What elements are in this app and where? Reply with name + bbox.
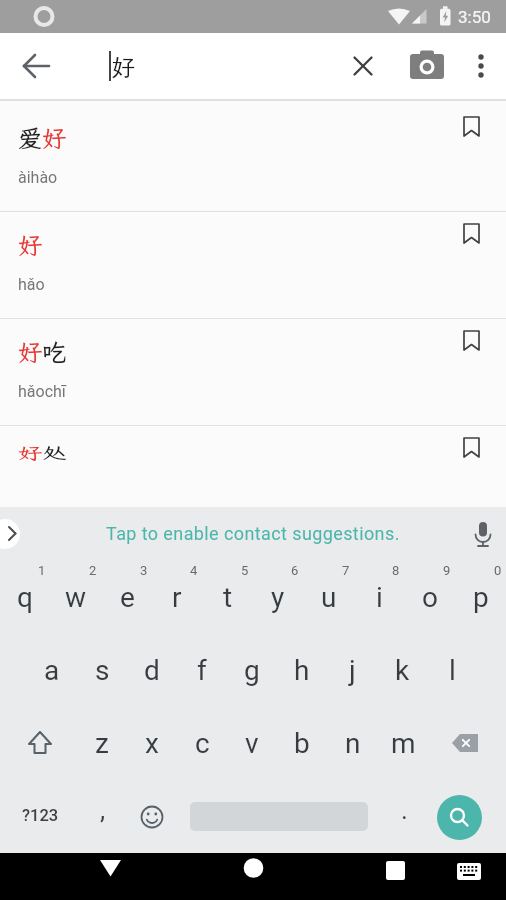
button[interactable] [15,718,65,768]
staticText: h [294,654,310,687]
staticText: t [223,581,233,614]
button[interactable]: g [227,645,277,695]
button[interactable]: k [377,645,427,695]
staticText: 8 [392,563,400,578]
button[interactable] [372,853,419,900]
staticText: 4 [190,563,198,578]
button[interactable]: 9 [422,545,472,595]
staticText: m [391,727,416,760]
button[interactable]: 3 [119,545,169,595]
button[interactable] [463,437,480,458]
staticText: b [294,727,310,760]
button[interactable]: 好 [112,53,135,82]
button[interactable]: c [177,718,227,768]
staticText: n [345,727,361,760]
staticText: u [321,581,337,614]
staticText: 好处 [18,442,66,464]
staticText: 0 [494,563,502,578]
button[interactable] [130,795,174,839]
button[interactable]: z [77,718,127,768]
button[interactable]: f [177,645,227,695]
button[interactable] [405,44,449,88]
button[interactable] [463,223,480,244]
button[interactable]: q [0,572,50,622]
button[interactable] [12,42,60,90]
staticText: hǎochī [18,382,66,401]
button[interactable]: y [253,572,303,622]
staticText: 1 [38,563,46,578]
staticText: w [65,581,87,614]
button[interactable]: 好 [0,212,506,319]
staticText: j [349,654,356,687]
button[interactable]: m [378,718,428,768]
button[interactable]: ?123 [15,790,65,840]
button[interactable]: 好吃 [0,319,506,426]
staticText: àihào [18,168,58,187]
button[interactable]: 8 [371,545,421,595]
staticText: y [271,581,285,614]
button[interactable]: p [456,572,506,622]
button[interactable]: 0 [473,545,506,595]
staticText: 好 [18,229,42,261]
button[interactable]: 7 [321,545,371,595]
button[interactable]: t [203,572,253,622]
button[interactable]: u [304,572,354,622]
staticText: e [120,581,135,614]
button[interactable] [440,718,490,768]
button[interactable]: 5 [220,545,270,595]
button[interactable]: o [405,572,455,622]
button[interactable]: s [77,645,127,695]
staticText: l [449,654,456,687]
button[interactable] [0,519,20,549]
button[interactable]: x [127,718,177,768]
staticText: , [100,795,106,825]
staticText: o [422,581,438,614]
button[interactable]: h [277,645,327,695]
button[interactable]: b [277,718,327,768]
staticText: z [95,727,109,760]
staticText: ?123 [22,806,59,825]
button[interactable] [463,330,480,351]
button[interactable]: 爱好 [0,105,506,212]
staticText: 7 [342,563,350,578]
button[interactable]: i [354,572,404,622]
staticText: r [172,581,182,614]
button[interactable]: e [102,572,152,622]
button[interactable]: 4 [169,545,219,595]
staticText: 3:50 [458,7,491,27]
button[interactable]: n [328,718,378,768]
button[interactable]: l [427,645,477,695]
button[interactable]: w [51,572,101,622]
staticText: 好吃 [18,336,66,368]
button[interactable] [341,44,385,88]
staticText: p [473,581,489,614]
staticText: 3 [140,563,148,578]
button[interactable]: a [27,645,77,695]
staticText: . [401,795,408,825]
button[interactable] [459,44,503,88]
button[interactable]: v [227,718,277,768]
staticText: 5 [241,563,249,578]
staticText: k [395,654,410,687]
staticText: s [95,654,110,687]
button[interactable]: 好处 [0,426,506,507]
button[interactable]: j [327,645,377,695]
button[interactable] [87,853,134,900]
button[interactable] [449,853,489,893]
button[interactable] [463,116,480,137]
button[interactable]: 2 [68,545,118,595]
staticText: 6 [291,563,299,578]
button[interactable]: 1 [17,545,67,595]
staticText: 爱好 [18,122,66,154]
button[interactable]: 6 [270,545,320,595]
staticText: d [144,654,160,687]
button[interactable]: , [78,785,128,835]
button[interactable] [458,510,506,558]
button[interactable]: Tap to enable contact suggestions. [106,523,400,544]
button[interactable] [437,795,482,840]
button[interactable]: . [379,785,429,835]
button[interactable]: r [152,572,202,622]
button[interactable] [230,853,277,900]
button[interactable]: d [127,645,177,695]
